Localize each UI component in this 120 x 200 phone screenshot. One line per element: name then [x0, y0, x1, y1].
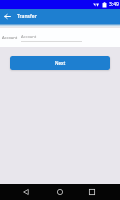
staticText: Account	[21, 34, 37, 39]
button[interactable]: Back	[20, 184, 32, 200]
button[interactable]: Recent apps	[86, 184, 98, 200]
staticText: Next	[55, 60, 66, 66]
button[interactable]: Next	[10, 56, 110, 70]
button[interactable]: Home	[54, 184, 66, 200]
staticText: 3:49	[109, 1, 119, 8]
staticText: Account	[2, 35, 18, 40]
staticText: Transfer	[17, 13, 37, 20]
button[interactable]: Navigate up	[0, 9, 15, 24]
button[interactable]: Account	[0, 28, 120, 47]
